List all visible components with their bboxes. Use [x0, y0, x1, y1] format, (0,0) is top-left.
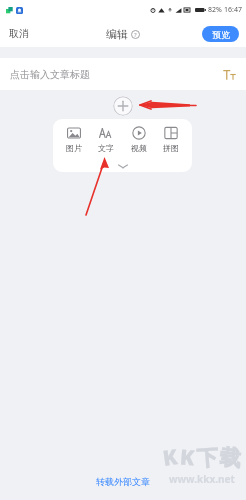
staticText: 下 [196, 444, 219, 472]
staticText: 82% [208, 5, 222, 15]
staticText: 转载外部文章 [96, 476, 150, 487]
staticText: 预览 [212, 29, 230, 40]
button[interactable]: Help [131, 30, 140, 39]
staticText: ? [134, 31, 137, 39]
staticText: 文字 [98, 143, 114, 153]
staticText: 16:47 [224, 5, 242, 15]
staticText: K [161, 442, 180, 473]
staticText: K [179, 442, 196, 472]
staticText: 图片 [66, 143, 82, 153]
button[interactable]: 图片 [63, 125, 85, 154]
staticText: 编辑 [106, 27, 128, 41]
staticText: 拼图 [163, 143, 179, 153]
button[interactable]: 文字 [95, 125, 117, 154]
button[interactable]: Collapse [112, 162, 134, 172]
button[interactable]: 转载外部文章 [90, 474, 156, 489]
button[interactable]: 预览 [202, 26, 239, 42]
button[interactable]: 点击输入文章标题 [0, 58, 246, 90]
button[interactable]: 视频 [128, 125, 150, 154]
staticText: www.kkx.net [169, 472, 235, 486]
button[interactable]: Add content [113, 96, 133, 116]
staticText: 取消 [9, 27, 29, 40]
staticText: 点击输入文章标题 [10, 68, 90, 81]
staticText: 视频 [131, 143, 147, 153]
button[interactable]: 取消 [0, 23, 38, 44]
staticText: 载 [219, 444, 242, 472]
button[interactable]: Text style [223, 68, 236, 81]
button[interactable]: 拼图 [160, 125, 182, 154]
